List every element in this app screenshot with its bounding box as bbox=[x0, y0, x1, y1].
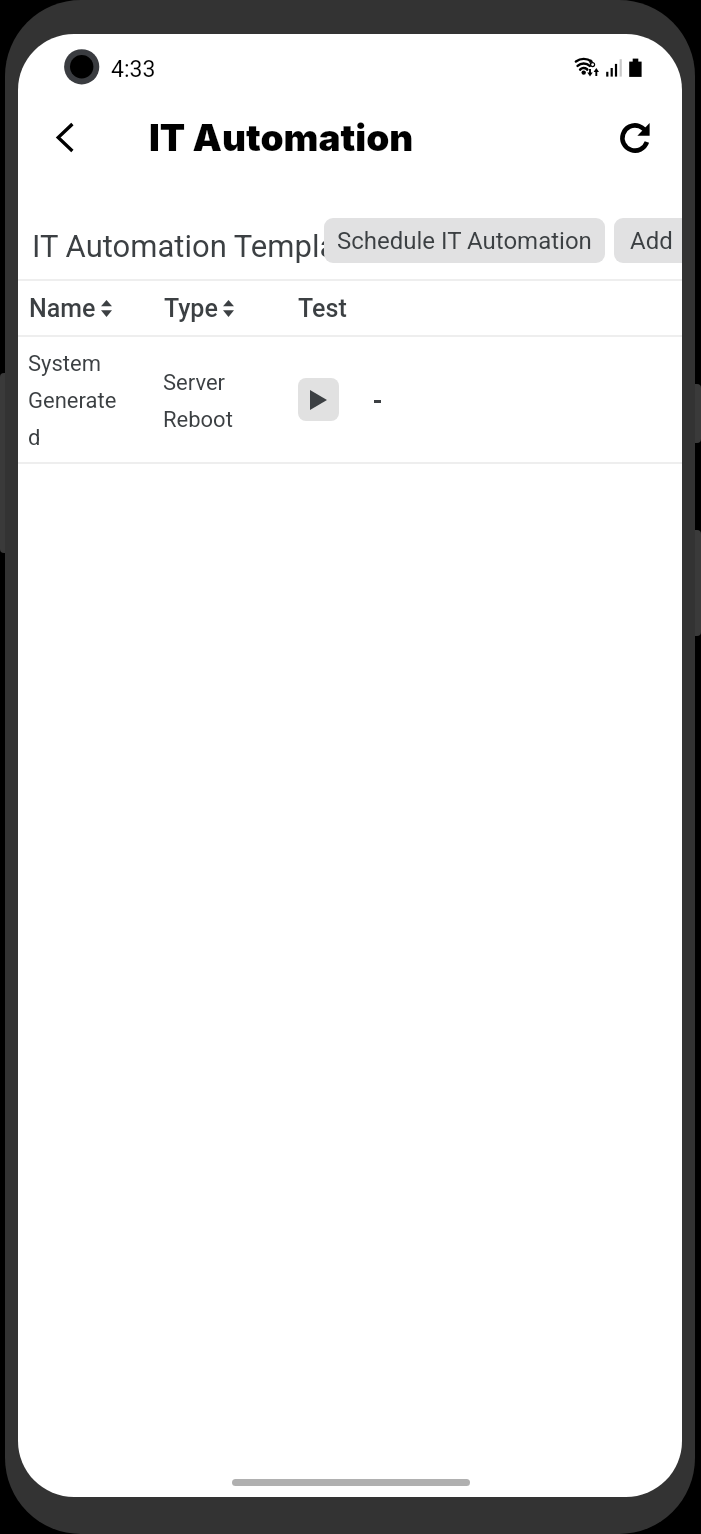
button[interactable]: Test bbox=[298, 280, 347, 336]
staticText: System Generated bbox=[28, 351, 120, 451]
staticText: Server Reboot bbox=[163, 370, 239, 433]
button[interactable]: Run test bbox=[298, 378, 339, 421]
button[interactable]: Refresh bbox=[609, 112, 660, 163]
staticText: Schedule IT Automation bbox=[337, 227, 592, 255]
button[interactable]: Add bbox=[614, 218, 682, 263]
staticText: Add bbox=[630, 227, 673, 255]
staticText: Test bbox=[298, 294, 347, 323]
staticText: Type bbox=[164, 294, 218, 323]
button[interactable]: Schedule IT Automation bbox=[324, 218, 605, 263]
staticText: Name bbox=[29, 294, 96, 323]
staticText: IT Automation bbox=[149, 115, 414, 160]
button[interactable]: Name bbox=[29, 280, 112, 336]
button[interactable]: Type bbox=[164, 280, 234, 336]
button[interactable]: Back bbox=[34, 104, 92, 162]
staticText: IT Automation Templates bbox=[32, 228, 379, 264]
staticText: 4:33 bbox=[111, 56, 156, 83]
